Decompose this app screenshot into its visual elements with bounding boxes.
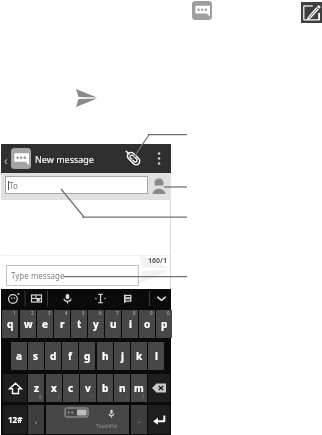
staticText: 160/1 (148, 256, 167, 266)
staticText: ... (141, 427, 145, 432)
staticText: i (129, 317, 132, 331)
staticText: ? (142, 394, 145, 401)
staticText: - (75, 394, 77, 401)
staticText: , (35, 414, 38, 425)
button[interactable]: j (114, 342, 130, 370)
button[interactable]: Emoji (4, 289, 22, 308)
button[interactable]: u (105, 310, 121, 338)
button[interactable]: Hide keyboard (152, 289, 170, 308)
staticText: . (138, 414, 141, 425)
button[interactable]: c (63, 374, 79, 402)
button[interactable]: s (28, 342, 44, 370)
button[interactable]: z (28, 374, 44, 402)
staticText: New message (35, 153, 94, 165)
staticText: u (110, 317, 117, 331)
staticText: q (7, 317, 14, 331)
staticText: ' (92, 394, 94, 401)
button[interactable]: q (2, 310, 18, 338)
button[interactable]: l (148, 342, 164, 370)
button[interactable]: Choose contact (152, 178, 166, 194)
button[interactable]: v (80, 374, 96, 402)
staticText: z (34, 381, 39, 395)
staticText: h (102, 349, 109, 363)
button[interactable]: Compose new message (301, 2, 322, 23)
staticText: t (77, 317, 82, 331)
button[interactable]: a (11, 342, 27, 370)
button[interactable]: d (45, 342, 61, 370)
button[interactable]: Enter (148, 405, 170, 434)
staticText: k (136, 349, 143, 363)
button[interactable]: f (62, 342, 78, 370)
button[interactable]: e (37, 310, 53, 338)
staticText: : (109, 394, 111, 401)
staticText: v (85, 381, 91, 395)
staticText: o (144, 317, 151, 331)
staticText: 4 (65, 310, 68, 316)
button[interactable]: m (131, 374, 147, 402)
button[interactable]: Messaging (192, 1, 212, 20)
button[interactable]: b (97, 374, 113, 402)
button[interactable]: Backspace (148, 374, 170, 402)
staticText: x (51, 381, 57, 395)
staticText: 1 (13, 310, 16, 316)
button[interactable]: y (88, 310, 104, 338)
button[interactable]: o (139, 310, 155, 338)
staticText: j (121, 349, 124, 363)
staticText: s (33, 349, 39, 363)
staticText: 0 (167, 310, 170, 316)
staticText: w (24, 317, 33, 331)
button[interactable]: Type message (6, 265, 139, 286)
staticText: ; (126, 394, 128, 401)
staticText: 9 (150, 310, 153, 316)
staticText: 2 (31, 310, 34, 316)
staticText: 7 (116, 310, 119, 316)
button[interactable]: . (131, 405, 147, 434)
button[interactable]: Shift (3, 374, 27, 402)
staticText: 3 (48, 310, 51, 316)
button[interactable]: To (5, 176, 148, 194)
staticText: f (68, 349, 72, 363)
button[interactable]: g (79, 342, 95, 370)
button[interactable]: w (20, 310, 36, 338)
staticText: y (93, 317, 99, 331)
staticText: 5 (82, 310, 85, 316)
button[interactable]: Image (27, 289, 45, 308)
staticText: 12# (8, 414, 23, 425)
button[interactable]: p (156, 310, 172, 338)
button[interactable]: Space (46, 405, 129, 434)
staticText: Type message (11, 270, 65, 281)
staticText: l (155, 349, 158, 363)
button[interactable]: Text cursor (91, 289, 109, 308)
button[interactable]: r (54, 310, 70, 338)
button[interactable]: n (114, 374, 130, 402)
button[interactable]: t (71, 310, 87, 338)
staticText: n (119, 381, 126, 395)
staticText: TouchPal (96, 423, 118, 430)
staticText: 6 (99, 310, 102, 316)
staticText: p (161, 317, 168, 331)
button[interactable]: Voice input (58, 289, 76, 308)
staticText: r (60, 317, 65, 331)
staticText: To (9, 180, 18, 191)
staticText: ... (21, 427, 25, 432)
staticText: / (58, 394, 60, 401)
staticText: ... (38, 427, 42, 432)
staticText: c (68, 381, 74, 395)
staticText: ‹ (4, 152, 8, 168)
staticText: d (50, 349, 57, 363)
button[interactable]: h (97, 342, 113, 370)
button[interactable]: i (122, 310, 138, 338)
button[interactable]: Attach (124, 148, 142, 168)
staticText: 8 (133, 310, 136, 316)
button[interactable]: x (46, 374, 62, 402)
button[interactable]: 12# (3, 405, 27, 434)
staticText: e (42, 317, 48, 331)
staticText: a (16, 349, 22, 363)
button[interactable]: , (28, 405, 44, 434)
button[interactable]: k (131, 342, 147, 370)
staticText: 8 (39, 394, 42, 401)
button[interactable]: More options (153, 151, 165, 166)
button[interactable]: Clipboard (118, 289, 136, 308)
staticText: g (84, 349, 91, 363)
staticText: b (102, 381, 109, 395)
